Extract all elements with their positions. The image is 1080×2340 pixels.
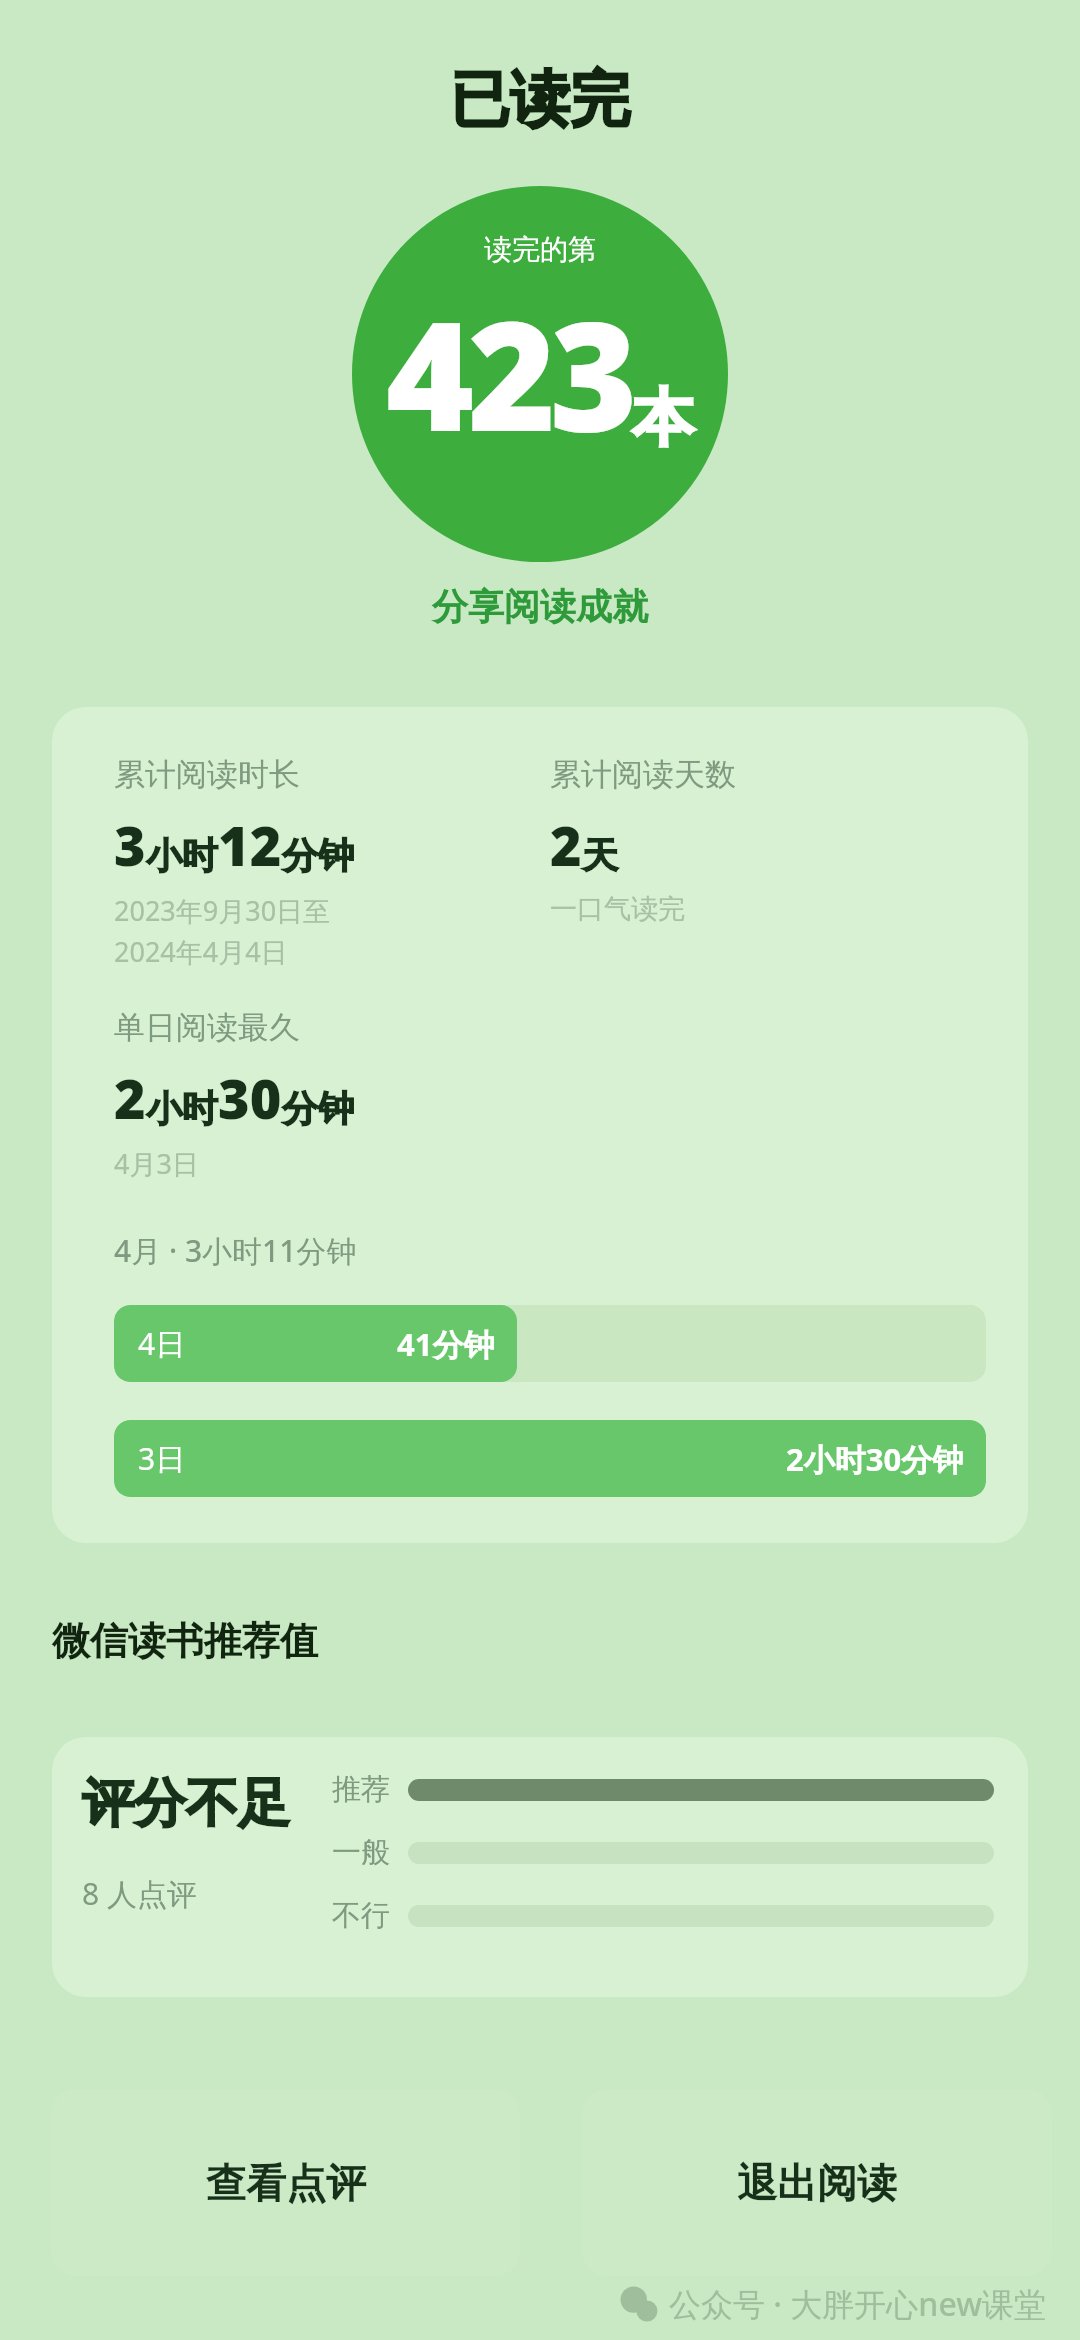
button[interactable]: 读完的第423本 bbox=[352, 186, 728, 562]
staticText: 微信读书推荐值 bbox=[52, 1617, 318, 1665]
staticText: 不行 bbox=[332, 1897, 390, 1934]
staticText: 单日阅读最久 bbox=[114, 1008, 300, 1047]
button[interactable]: 评分不足 bbox=[52, 1737, 1028, 1997]
staticText: 评分不足 bbox=[82, 1771, 290, 1837]
button[interactable]: 退出阅读 bbox=[582, 2089, 1052, 2276]
staticText: 12 bbox=[218, 808, 282, 882]
button[interactable]: 分享阅读成就 bbox=[0, 584, 1080, 629]
staticText: 小时 bbox=[146, 1086, 218, 1131]
staticText: 公众号 · 大胖开心new课堂 bbox=[669, 2282, 1046, 2326]
staticText: 一口气读完 bbox=[550, 892, 685, 926]
button[interactable]: 查看点评 bbox=[51, 2089, 520, 2276]
staticText: 分享阅读成就 bbox=[432, 584, 648, 629]
staticText: 退出阅读 bbox=[737, 2158, 897, 2208]
staticText: 4日 bbox=[138, 1323, 186, 1364]
staticText: 分钟 bbox=[282, 833, 354, 878]
staticText: 本 bbox=[632, 379, 694, 457]
staticText: 分钟 bbox=[282, 1086, 354, 1131]
staticText: 累计阅读时长 bbox=[114, 755, 300, 794]
staticText: 天 bbox=[582, 833, 618, 878]
staticText: 2 bbox=[114, 1061, 146, 1135]
staticText: 8 人点评 bbox=[82, 1873, 197, 1914]
staticText: 读完的第 bbox=[484, 232, 596, 267]
staticText: 查看点评 bbox=[206, 2158, 366, 2208]
staticText: 推荐 bbox=[332, 1771, 390, 1808]
staticText: 41分钟 bbox=[397, 1323, 495, 1365]
staticText: 2 bbox=[550, 808, 582, 882]
staticText: 30 bbox=[218, 1061, 282, 1135]
button[interactable]: 3日 bbox=[114, 1420, 986, 1497]
staticText: 一般 bbox=[332, 1834, 390, 1871]
staticText: 小时 bbox=[146, 833, 218, 878]
staticText: 已读完 bbox=[0, 62, 1080, 138]
staticText: 2023年9月30日至 bbox=[114, 892, 331, 929]
staticText: 2024年4月4日 bbox=[114, 933, 288, 970]
staticText: 2小时30分钟 bbox=[786, 1438, 964, 1480]
staticText: 423 bbox=[386, 271, 632, 475]
staticText: 4月 · 3小时11分钟 bbox=[114, 1230, 357, 1271]
staticText: 3日 bbox=[138, 1438, 186, 1479]
staticText: 3 bbox=[114, 808, 146, 882]
button[interactable]: 4日 bbox=[114, 1305, 986, 1382]
staticText: 累计阅读天数 bbox=[550, 755, 736, 794]
staticText: 4月3日 bbox=[114, 1145, 199, 1182]
